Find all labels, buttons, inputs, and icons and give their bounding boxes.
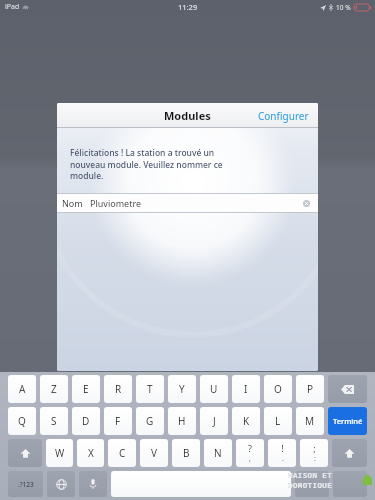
staticText: F <box>115 414 121 428</box>
staticText: V <box>151 446 157 460</box>
button[interactable]: E <box>72 375 100 403</box>
button[interactable]: B <box>172 439 200 467</box>
staticText: X <box>88 446 94 460</box>
staticText: iPad <box>5 2 20 12</box>
staticText: I <box>244 382 248 396</box>
staticText: S <box>51 414 57 428</box>
button[interactable]: U <box>200 375 228 403</box>
staticText: : <box>314 454 316 464</box>
button[interactable]: Q <box>8 407 36 435</box>
staticText: Pluviometre <box>90 197 142 209</box>
staticText: O <box>274 382 282 396</box>
button[interactable]: D <box>72 407 100 435</box>
button[interactable]: M <box>296 407 324 435</box>
button[interactable]: Keyboard layout <box>333 471 367 497</box>
button[interactable]: ; <box>300 439 328 467</box>
button[interactable]: A <box>8 375 36 403</box>
button[interactable]: Hide keyboard <box>295 471 329 497</box>
staticText: ! <box>281 442 284 454</box>
button[interactable]: Dictation <box>79 471 107 497</box>
button[interactable]: N <box>204 439 232 467</box>
staticText: T <box>147 382 153 396</box>
staticText: P <box>307 382 314 396</box>
button[interactable]: ! <box>268 439 296 467</box>
staticText: E <box>83 382 89 396</box>
button[interactable]: Backspace <box>328 375 367 403</box>
staticText: ? <box>248 442 252 454</box>
button[interactable]: V <box>140 439 168 467</box>
staticText: DOMOTIQUE <box>288 480 333 488</box>
staticText: U <box>210 382 218 396</box>
staticText: ; <box>313 442 316 454</box>
button[interactable]: C <box>108 439 136 467</box>
staticText: B <box>183 446 190 460</box>
staticText: Z <box>51 382 57 396</box>
button[interactable]: J <box>200 407 228 435</box>
button[interactable]: W <box>46 439 73 467</box>
staticText: W <box>55 446 65 460</box>
staticText: Q <box>18 414 26 428</box>
button[interactable]: H <box>168 407 196 435</box>
staticText: H <box>178 414 186 428</box>
button[interactable]: P <box>296 375 324 403</box>
button[interactable]: Change keyboard <box>47 471 75 497</box>
button[interactable]: Z <box>40 375 68 403</box>
button[interactable]: O <box>264 375 292 403</box>
staticText: D <box>82 414 90 428</box>
staticText: .?123 <box>18 480 34 489</box>
button[interactable]: Shift <box>332 439 367 467</box>
staticText: Configurer <box>258 109 309 123</box>
button[interactable]: G <box>136 407 164 435</box>
button[interactable]: I <box>232 375 260 403</box>
staticText: Y <box>179 382 185 396</box>
staticText: , <box>249 454 251 464</box>
staticText: A <box>19 382 26 396</box>
button[interactable]: R <box>104 375 132 403</box>
staticText: Terminé <box>333 416 363 426</box>
staticText: Modules <box>164 108 211 123</box>
button[interactable]: Y <box>168 375 196 403</box>
staticText: MAISON ET <box>288 470 333 480</box>
button[interactable]: Configurer <box>249 105 318 127</box>
staticText: Félicitations ! La station a trouvé un n… <box>70 147 223 182</box>
staticText: C <box>119 446 126 460</box>
button[interactable]: F <box>104 407 132 435</box>
button[interactable]: S <box>40 407 68 435</box>
staticText: Nom <box>62 197 83 209</box>
staticText: N <box>214 446 222 460</box>
button[interactable]: T <box>136 375 164 403</box>
button[interactable]: Shift <box>8 439 42 467</box>
button[interactable]: Nom <box>57 193 318 213</box>
staticText: K <box>243 414 250 428</box>
staticText: 11:29 <box>178 2 198 12</box>
button[interactable]: Numbers and symbols <box>8 471 43 497</box>
button[interactable] <box>111 471 291 497</box>
staticText: L <box>275 414 281 428</box>
staticText: . <box>282 454 284 464</box>
button[interactable]: K <box>232 407 260 435</box>
staticText: M <box>305 414 315 428</box>
staticText: G <box>146 414 154 428</box>
button[interactable]: Terminé <box>328 407 367 435</box>
button[interactable]: Clear text <box>300 197 312 209</box>
staticText: 10 % <box>336 3 351 12</box>
button[interactable]: X <box>77 439 104 467</box>
button[interactable]: L <box>264 407 292 435</box>
staticText: J <box>213 414 216 428</box>
button[interactable]: ? <box>236 439 264 467</box>
staticText: R <box>115 382 122 396</box>
